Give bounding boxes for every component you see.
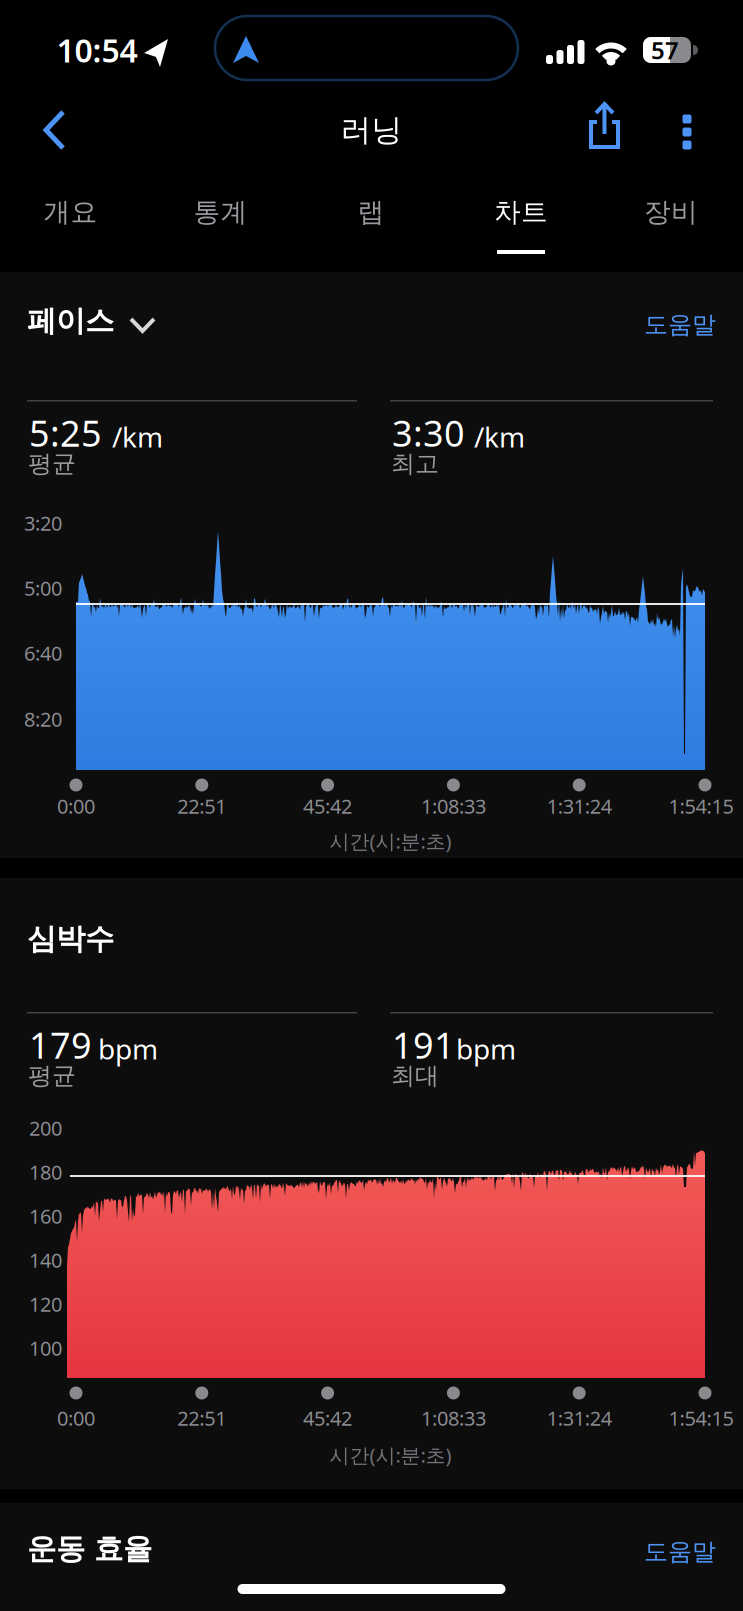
staticText: bpm (456, 1030, 516, 1067)
staticText: 운동 효율 (27, 1531, 152, 1567)
staticText: 1:31:24 (547, 1405, 612, 1431)
staticText: 120 (29, 1291, 62, 1317)
staticText: 최대 (391, 1061, 439, 1090)
staticText: 3:20 (24, 510, 62, 536)
staticText: bpm (98, 1030, 158, 1067)
staticText: 차트 (494, 196, 548, 228)
staticText: 최고 (391, 449, 439, 478)
button[interactable] (0, 0, 743, 1611)
button[interactable]: 차트 (0, 0, 743, 1611)
staticText: 시간(시:분:초) (329, 1442, 451, 1468)
staticText: 100 (29, 1335, 62, 1361)
staticText: 평균 (28, 1061, 76, 1090)
staticText: 45:42 (303, 1405, 352, 1431)
staticText: 페이스 (27, 303, 114, 339)
staticText: 통계 (193, 196, 247, 228)
staticText: 180 (29, 1159, 62, 1185)
button[interactable] (0, 0, 743, 1611)
staticText: 140 (29, 1247, 62, 1273)
staticText: 1:54:15 (668, 1405, 733, 1431)
staticText: 도움말 (644, 1537, 716, 1566)
staticText: 8:20 (24, 706, 62, 732)
staticText: 평균 (28, 449, 76, 478)
staticText: 6:40 (24, 640, 62, 666)
staticText: 200 (29, 1115, 62, 1141)
button[interactable]: 통계 (0, 0, 743, 1611)
staticText: 러닝 (340, 111, 402, 149)
staticText: 5:00 (24, 575, 62, 601)
staticText: 1:31:24 (547, 793, 612, 819)
staticText: 57 (651, 34, 679, 66)
staticText: /km (474, 418, 525, 455)
button[interactable] (0, 0, 743, 1611)
staticText: 0:00 (57, 793, 95, 819)
staticText: 시간(시:분:초) (329, 828, 451, 854)
staticText: 10:54 (56, 29, 137, 71)
staticText: 1:54:15 (668, 793, 733, 819)
staticText: /km (112, 418, 163, 455)
staticText: 1:08:33 (421, 793, 486, 819)
staticText: 179 (29, 1021, 92, 1069)
button[interactable]: 랩 (0, 0, 743, 1611)
button[interactable]: 개요 (0, 0, 743, 1611)
button[interactable]: 도움말 (0, 0, 716, 29)
staticText: 장비 (644, 196, 698, 228)
staticText: 191 (392, 1021, 455, 1069)
staticText: 1:08:33 (421, 1405, 486, 1431)
staticText: 5:25 (29, 409, 102, 457)
staticText: 22:51 (177, 793, 226, 819)
staticText: 0:00 (57, 1405, 95, 1431)
staticText: 3:30 (392, 409, 465, 457)
staticText: 랩 (357, 196, 384, 228)
button[interactable]: 장비 (0, 0, 743, 1611)
staticText: 160 (29, 1203, 62, 1229)
staticText: 도움말 (644, 310, 716, 339)
button[interactable]: 도움말 (0, 0, 716, 29)
staticText: 22:51 (177, 1405, 226, 1431)
button[interactable] (0, 0, 743, 1611)
staticText: 개요 (43, 196, 97, 228)
staticText: 심박수 (27, 921, 114, 957)
staticText: 45:42 (303, 793, 352, 819)
